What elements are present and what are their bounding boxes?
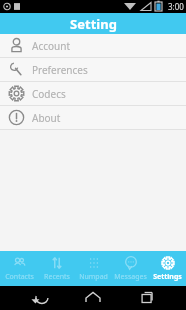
staticText: Account <box>32 39 71 53</box>
staticText: Codecs <box>32 87 66 101</box>
staticText: Setting <box>70 15 117 33</box>
button[interactable]: About <box>0 106 186 130</box>
button[interactable]: Codecs <box>0 82 186 106</box>
button[interactable]: Numpad <box>75 251 112 286</box>
button[interactable]: Messages <box>112 251 149 286</box>
staticText: Numpad <box>79 272 108 282</box>
button[interactable]: Preferences <box>0 58 186 82</box>
staticText: Messages <box>114 272 147 282</box>
staticText: Preferences <box>32 63 88 77</box>
staticText: Contacts <box>5 272 34 282</box>
button[interactable]: Contacts <box>0 251 38 286</box>
staticText: Settings <box>153 272 182 282</box>
staticText: 3:00 <box>168 1 184 12</box>
button[interactable]: Recents <box>38 251 75 286</box>
staticText: About <box>32 111 61 125</box>
staticText: Recents <box>44 272 70 282</box>
button[interactable]: Account <box>0 34 186 58</box>
button[interactable]: Settings <box>149 251 186 286</box>
